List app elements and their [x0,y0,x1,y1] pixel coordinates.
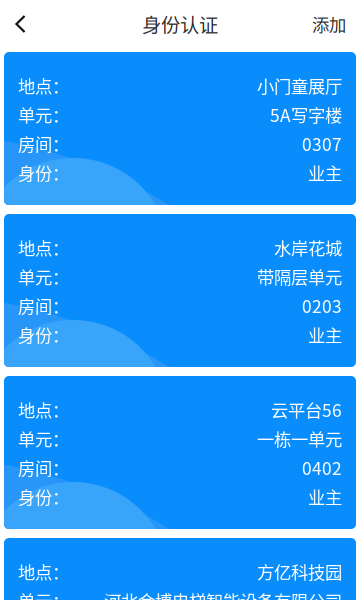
button[interactable]: 地点： [4,52,356,205]
staticText: 方亿科技园 [257,559,342,584]
staticText: 云平台56 [271,397,342,422]
staticText: 0203 [302,293,342,318]
staticText: 0307 [302,131,342,156]
button[interactable]: 地点： [4,214,356,367]
staticText: 水岸花城 [274,235,342,260]
staticText: 身份： [18,160,69,185]
staticText: 业主 [308,160,342,185]
staticText: 小门童展厅 [257,73,342,98]
staticText: 0402 [302,455,342,480]
button[interactable]: 地点： [4,376,356,529]
staticText: 业主 [308,322,342,347]
button[interactable]: 添加 [312,0,360,48]
staticText: 单元： [18,264,69,289]
staticText: 地点： [18,559,69,584]
button[interactable]: Back [0,0,41,48]
staticText: 单元： [18,588,69,600]
staticText: 房间： [18,131,69,156]
staticText: 一栋一单元 [257,426,342,451]
button[interactable]: 地点： [4,538,356,600]
staticText: 单元： [18,426,69,451]
staticText: 房间： [18,455,69,480]
staticText: 身份认证 [142,10,218,38]
staticText: 带隔层单元 [257,264,342,289]
staticText: 河北金博电梯智能设备有限公司 [104,588,342,600]
staticText: 身份： [18,322,69,347]
staticText: 身份： [18,484,69,509]
staticText: 单元： [18,102,69,127]
staticText: 地点： [18,73,69,98]
staticText: 添加 [312,11,346,37]
staticText: 业主 [308,484,342,509]
staticText: 地点： [18,235,69,260]
staticText: 房间： [18,293,69,318]
staticText: 地点： [18,397,69,422]
staticText: 5A写字楼 [270,102,342,127]
